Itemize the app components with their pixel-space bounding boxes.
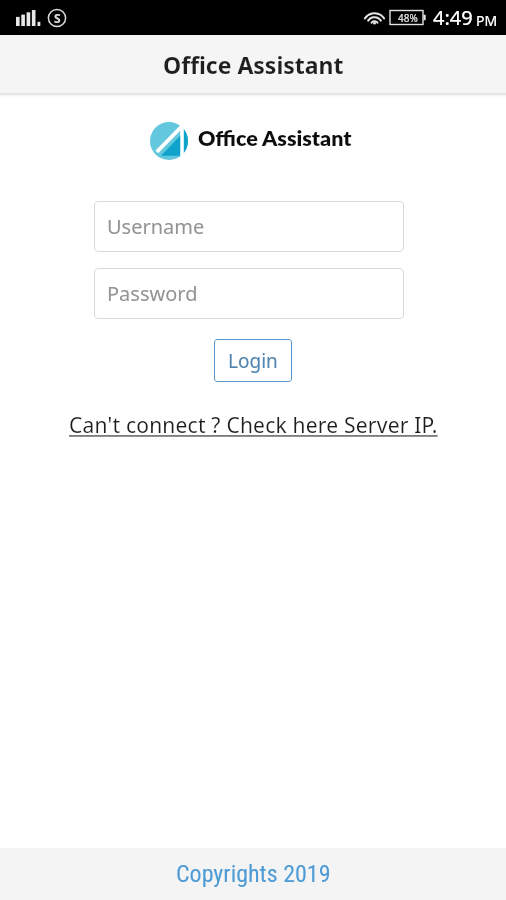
staticText: Office Assistant	[163, 49, 344, 80]
button[interactable]: Login	[214, 339, 292, 382]
staticText: Office Assistant	[198, 125, 352, 151]
staticText: Copyrights 2019	[176, 860, 331, 888]
button[interactable]: Can't connect ? Check here Server IP.	[69, 411, 438, 440]
other: Battery 48 percent	[389, 9, 427, 26]
staticText: Login	[228, 348, 278, 374]
staticText: S	[54, 10, 61, 26]
staticText: Username	[107, 213, 205, 240]
button[interactable]: Username	[94, 201, 404, 252]
other: Sync status	[47, 8, 67, 28]
other: Mobile signal strength	[16, 10, 39, 26]
other: Wi-Fi connected	[364, 10, 385, 26]
button[interactable]: Password	[94, 268, 404, 319]
staticText: 4:49	[433, 4, 473, 31]
staticText: Password	[107, 280, 198, 307]
staticText: PM	[476, 11, 498, 30]
staticText: 48%	[398, 11, 418, 25]
